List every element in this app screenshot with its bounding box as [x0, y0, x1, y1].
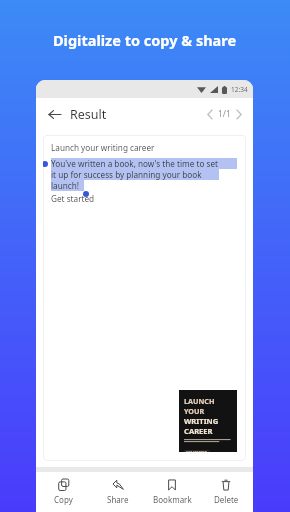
staticText: Copy [54, 494, 73, 505]
staticText: Share [107, 494, 129, 505]
staticText: it up for success by planning your book [51, 169, 202, 180]
staticText: Delete [214, 494, 239, 505]
staticText: LAUNCH [184, 396, 215, 406]
staticText: YOUR [184, 406, 205, 416]
staticText: Get started [51, 193, 95, 204]
staticText: CAREER [184, 426, 213, 436]
button[interactable]: Previous page [202, 106, 218, 122]
staticText: GET STARTED [186, 450, 208, 452]
staticText: launch! [51, 180, 80, 191]
staticText: Digitalize to copy & share [53, 30, 237, 50]
staticText: Result [70, 106, 107, 123]
staticText: You've written a book, now's the time to… [51, 158, 219, 169]
button[interactable]: LAUNCH [179, 390, 237, 452]
staticText: Launch your writing career [51, 142, 155, 153]
button[interactable]: Share [91, 472, 145, 512]
button[interactable]: Bookmark [145, 472, 199, 512]
staticText: 1/1 [218, 108, 231, 120]
staticText: WRITING [184, 416, 219, 426]
button[interactable]: Back [43, 103, 65, 125]
staticText: Bookmark [153, 494, 192, 505]
button[interactable]: Delete [199, 472, 253, 512]
button[interactable]: Next page [231, 106, 247, 122]
staticText: 12:34 [231, 85, 248, 94]
button[interactable]: Copy [36, 472, 91, 512]
